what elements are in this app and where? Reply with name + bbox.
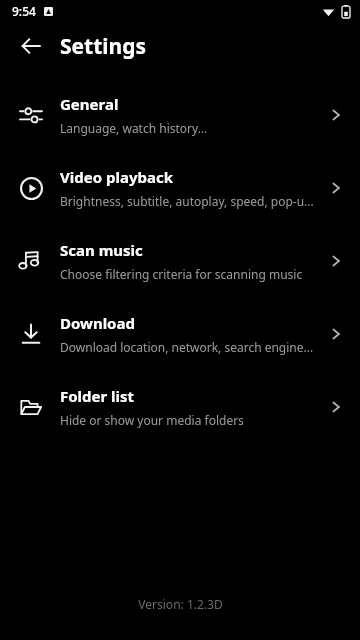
staticText: Video playback <box>60 167 173 187</box>
staticText: Brightness, subtitle, autoplay, speed, p… <box>60 193 314 209</box>
button[interactable]: Folder list <box>0 370 360 443</box>
staticText: Folder list <box>60 386 135 406</box>
staticText: 9:54 <box>12 3 36 19</box>
button[interactable]: Scan music <box>0 224 360 297</box>
button[interactable]: Back <box>14 29 48 63</box>
staticText: Settings <box>60 32 147 61</box>
button[interactable]: Download <box>0 297 360 370</box>
staticText: Choose filtering criteria for scanning m… <box>60 266 303 282</box>
staticText: Download location, network, search engin… <box>60 339 314 355</box>
button[interactable]: General <box>0 78 360 151</box>
staticText: Hide or show your media folders <box>60 412 244 428</box>
staticText: General <box>60 94 119 114</box>
staticText: Language, watch history... <box>60 120 208 136</box>
staticText: Download <box>60 313 135 333</box>
button[interactable]: Video playback <box>0 151 360 224</box>
staticText: Scan music <box>60 240 143 260</box>
staticText: Version: 1.2.3D <box>138 596 223 612</box>
